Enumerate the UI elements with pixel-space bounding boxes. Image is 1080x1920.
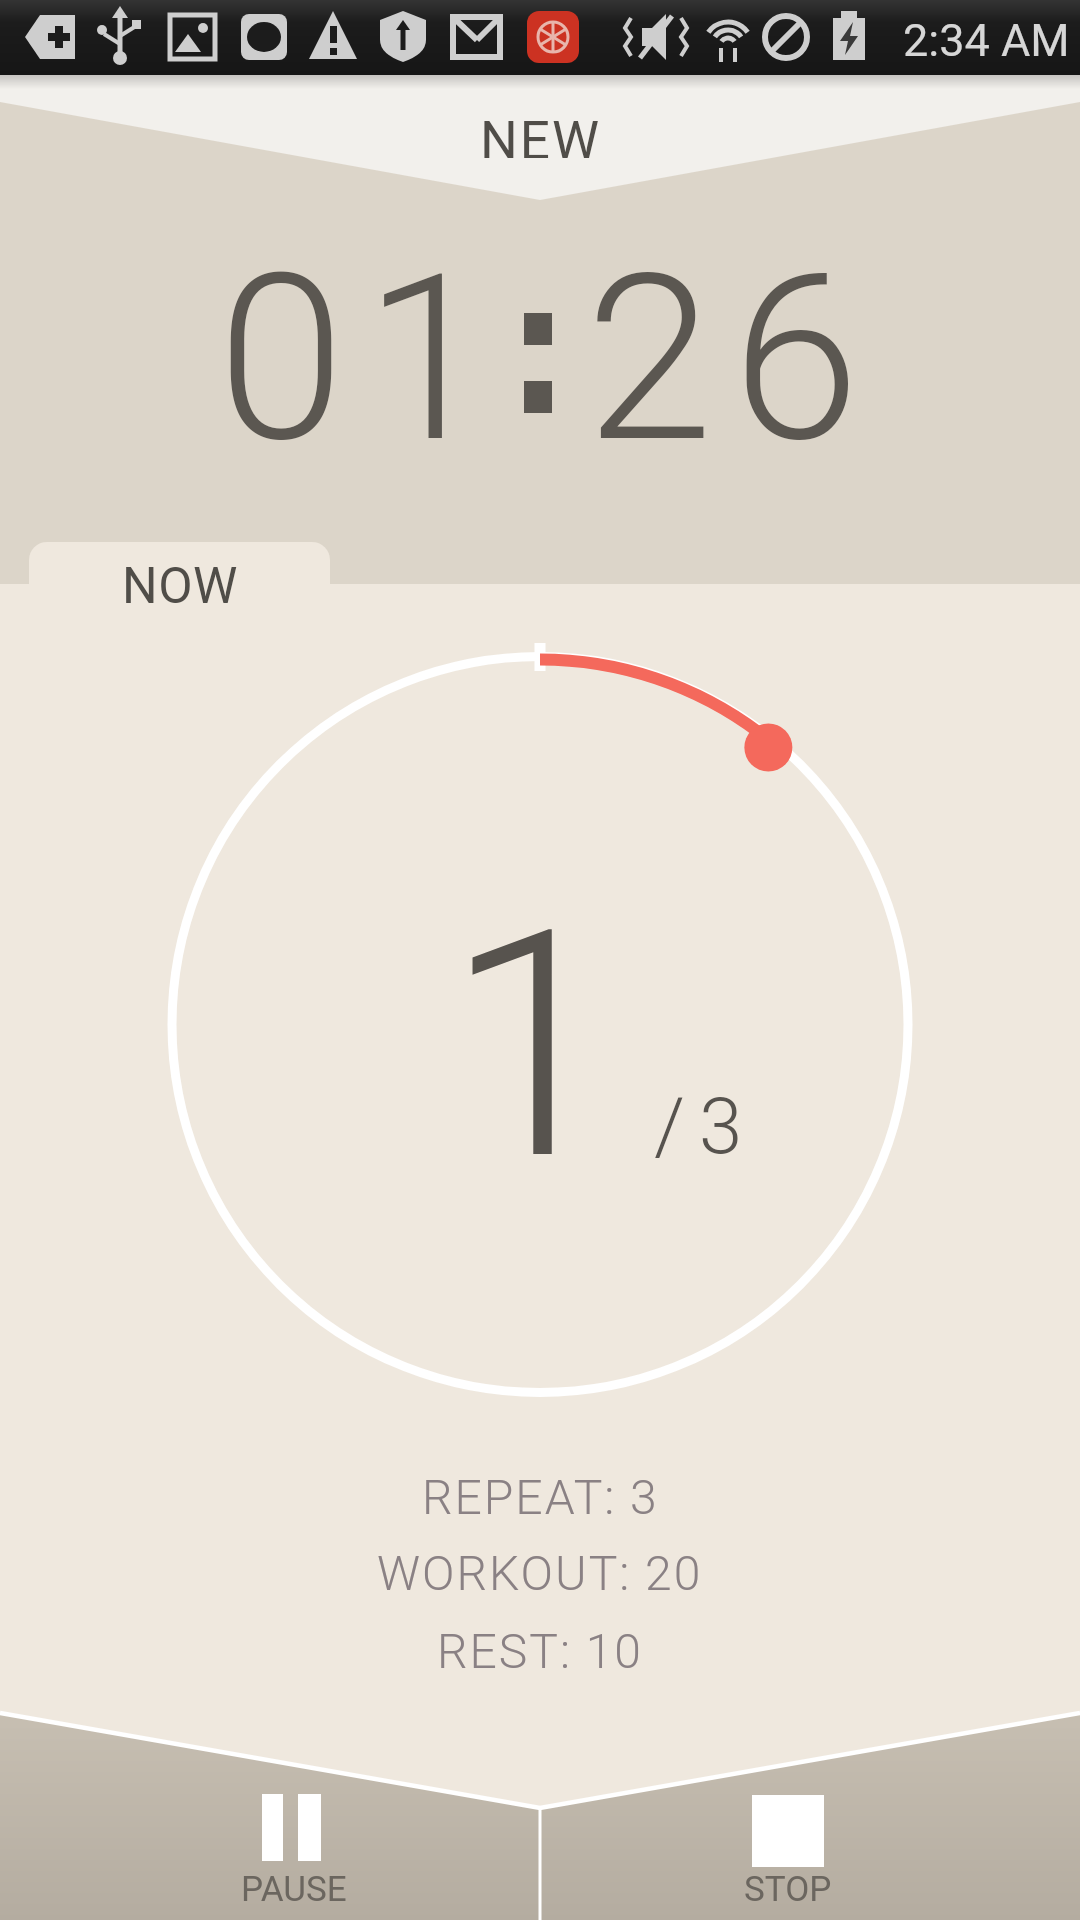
staticText: /3	[654, 1081, 757, 1172]
button[interactable]: STOP	[541, 1760, 1080, 1920]
staticText: NEW	[480, 110, 601, 158]
button[interactable]: NOW	[29, 542, 330, 602]
staticText: 1	[445, 862, 620, 1231]
staticText: REPEAT: 3	[422, 1469, 659, 1525]
staticText: 01 26	[217, 225, 879, 495]
staticText: 2:34 AM	[903, 14, 1070, 60]
staticText: PAUSE	[241, 1869, 347, 1910]
staticText: NOW	[122, 557, 238, 616]
staticText: REST: 10	[437, 1623, 643, 1679]
button[interactable]: NEW	[0, 85, 1080, 195]
button[interactable]: PAUSE	[0, 1760, 539, 1920]
staticText: WORKOUT: 20	[377, 1545, 703, 1601]
staticText: STOP	[744, 1869, 832, 1910]
